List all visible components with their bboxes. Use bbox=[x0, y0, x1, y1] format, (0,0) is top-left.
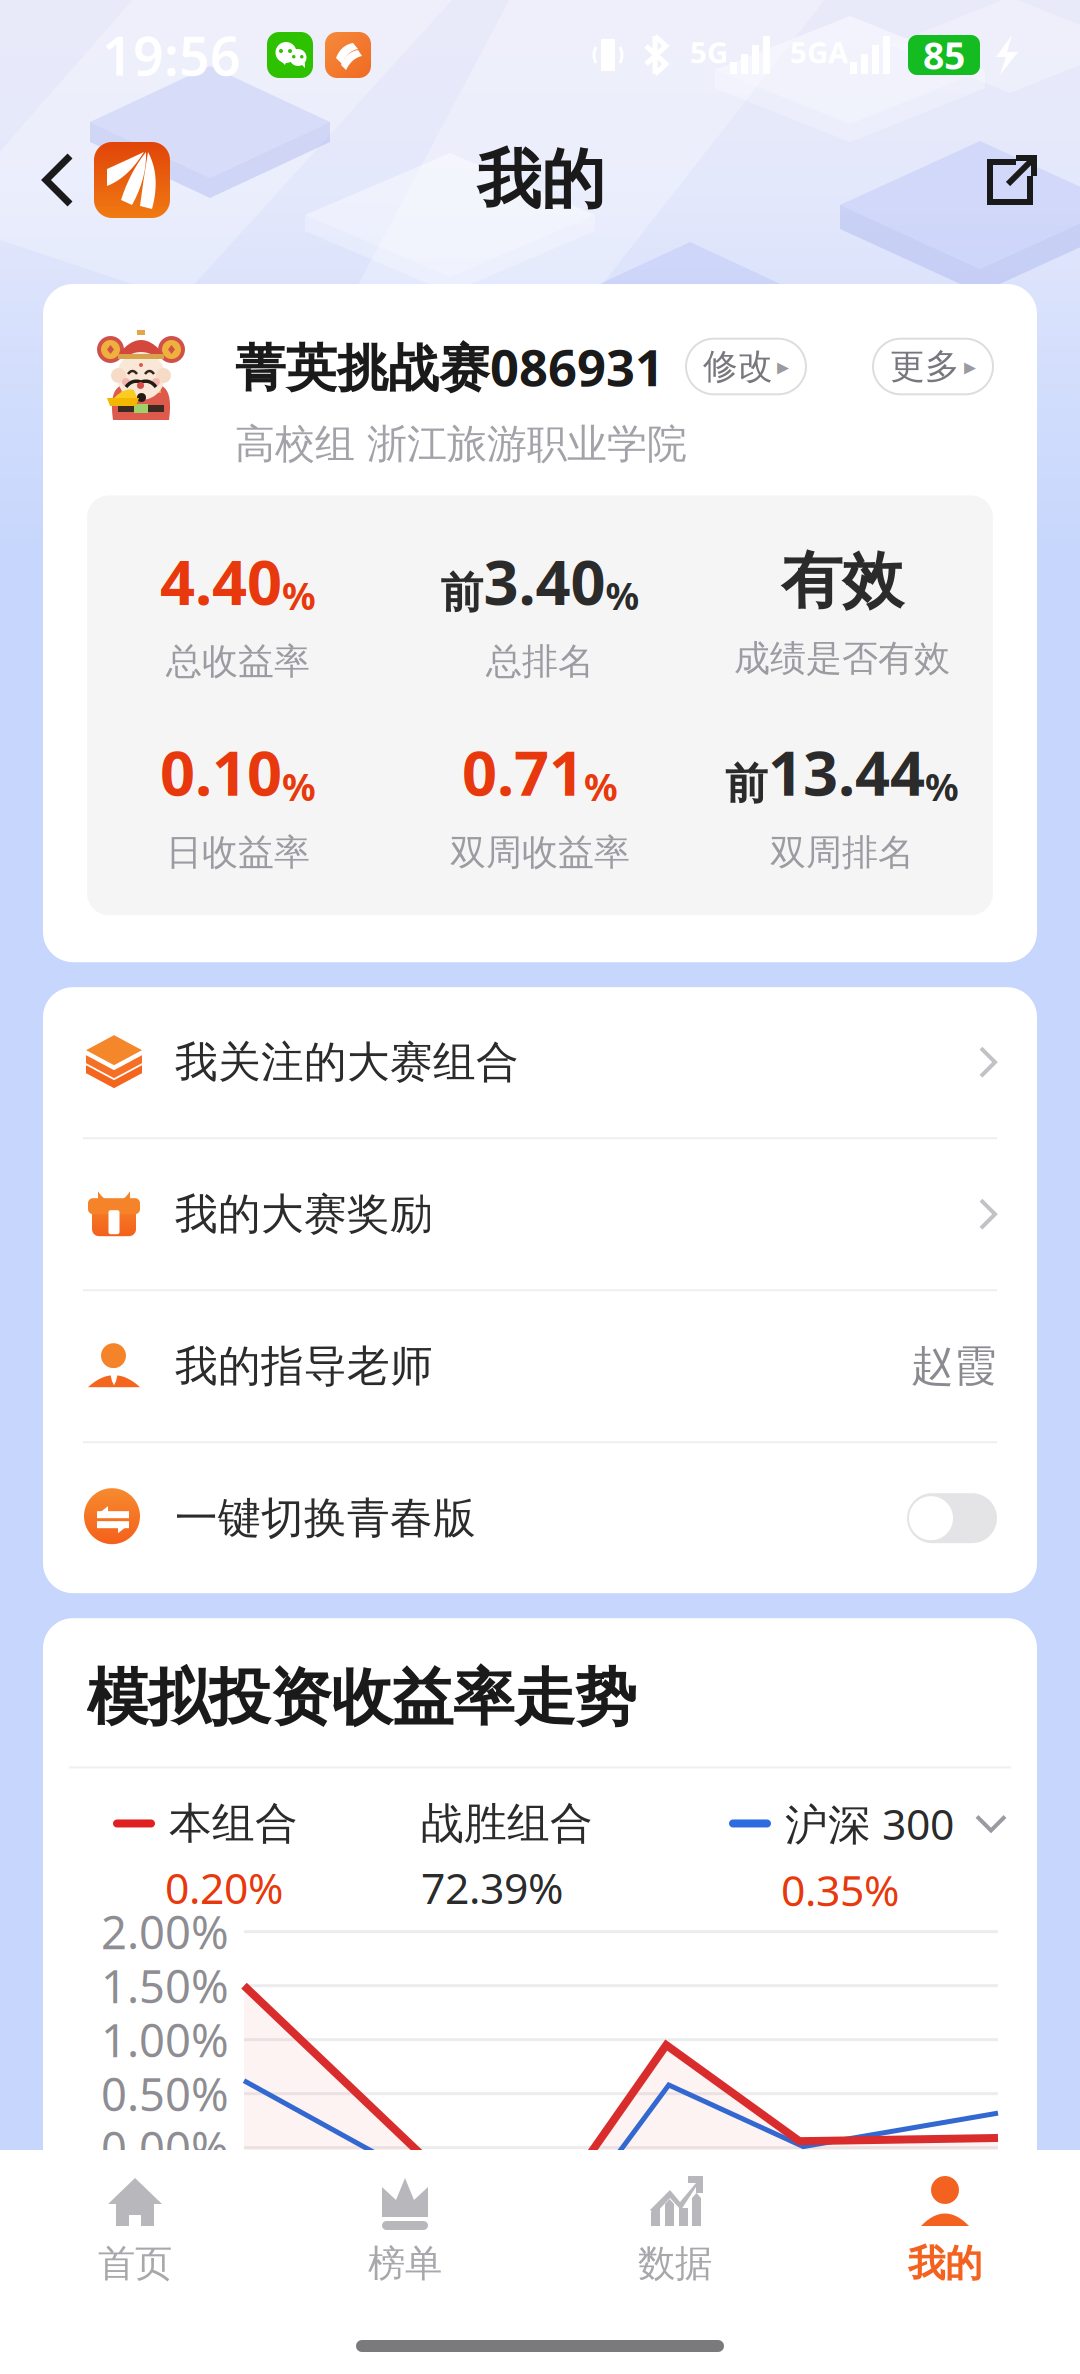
staticText: 85 bbox=[923, 30, 965, 80]
staticText: 72.39% bbox=[421, 1858, 563, 1916]
button[interactable]: 分享 bbox=[982, 150, 1042, 210]
staticText: 0.35% bbox=[781, 1861, 899, 1919]
staticText: 19:56 bbox=[102, 19, 241, 91]
staticText: 3.40 bbox=[483, 539, 605, 623]
button[interactable]: 首页 bbox=[0, 2158, 270, 2287]
button[interactable]: 我的大赛奖励 bbox=[43, 1139, 1037, 1289]
staticText: % bbox=[605, 570, 639, 621]
staticText: 0.20% bbox=[165, 1858, 283, 1916]
staticText: 我的 bbox=[908, 2240, 982, 2287]
staticText: 总排名 bbox=[486, 639, 594, 684]
staticText: 我的指导老师 bbox=[175, 1339, 433, 1393]
staticText: 0.10 bbox=[160, 730, 282, 814]
staticText: 0.00% bbox=[101, 2117, 229, 2178]
staticText: 赵霞 bbox=[911, 1339, 997, 1393]
staticText: 5G bbox=[690, 32, 728, 72]
staticText: 4.40 bbox=[160, 539, 282, 623]
staticText: 沪深 300 bbox=[785, 1794, 954, 1852]
staticText: 更多 bbox=[890, 345, 960, 388]
staticText: 战胜组合 bbox=[421, 1797, 593, 1850]
button[interactable]: 更多 bbox=[873, 339, 993, 394]
staticText: 修改 bbox=[703, 345, 773, 388]
staticText: % bbox=[925, 761, 959, 812]
staticText: 1.00% bbox=[101, 2009, 229, 2070]
staticText: ▸ bbox=[777, 352, 789, 380]
staticText: 我的 bbox=[477, 140, 605, 220]
staticText: 5GA bbox=[790, 32, 848, 72]
button[interactable]: 返回 bbox=[40, 152, 76, 208]
staticText: 我关注的大赛组合 bbox=[175, 1035, 519, 1089]
staticText: 1.50% bbox=[101, 1955, 229, 2016]
button[interactable]: 我的指导老师 bbox=[43, 1291, 1037, 1441]
staticText: 13.44 bbox=[768, 730, 925, 814]
button[interactable]: 修改 bbox=[686, 339, 806, 394]
staticText: 0.50% bbox=[101, 2063, 229, 2124]
button[interactable]: 东方财富 bbox=[76, 142, 170, 218]
staticText: 高校组 浙江旅游职业学院 bbox=[235, 419, 687, 469]
staticText: 2.00% bbox=[101, 1901, 229, 1962]
staticText: 前 bbox=[725, 757, 768, 811]
button[interactable]: 榜单 bbox=[270, 2158, 540, 2287]
button[interactable]: 一键切换青春版 bbox=[43, 1443, 1037, 1593]
staticText: 总收益率 bbox=[166, 639, 310, 684]
staticText: 有效 bbox=[781, 542, 903, 620]
staticText: 首页 bbox=[98, 2240, 172, 2287]
staticText: % bbox=[584, 761, 618, 812]
button[interactable]: 我关注的大赛组合 bbox=[43, 987, 1037, 1137]
staticText: 成绩是否有效 bbox=[734, 636, 950, 681]
staticText: % bbox=[282, 570, 316, 621]
staticText: 前 bbox=[440, 566, 483, 620]
staticText: % bbox=[282, 761, 316, 812]
staticText: 数据 bbox=[638, 2240, 712, 2287]
staticText: 菁英挑战赛086931 bbox=[235, 332, 664, 401]
button[interactable]: 数据 bbox=[540, 2158, 810, 2287]
staticText: 0.71 bbox=[462, 730, 584, 814]
staticText: ▸ bbox=[964, 352, 976, 380]
button[interactable]: 我的 bbox=[810, 2158, 1080, 2287]
staticText: 我的大赛奖励 bbox=[175, 1187, 433, 1241]
staticText: 双周收益率 bbox=[450, 830, 630, 875]
staticText: 榜单 bbox=[368, 2240, 442, 2287]
staticText: 模拟投资收益率走势 bbox=[87, 1659, 636, 1736]
staticText: 本组合 bbox=[169, 1797, 298, 1850]
staticText: 日收益率 bbox=[166, 830, 310, 875]
staticText: 双周排名 bbox=[770, 830, 914, 875]
staticText: 一键切换青春版 bbox=[175, 1491, 476, 1545]
